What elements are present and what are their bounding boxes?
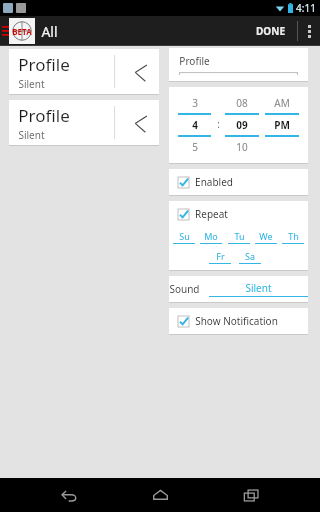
staticText: DONE <box>256 24 285 38</box>
button[interactable]: Sound <box>169 282 200 296</box>
button[interactable]: Repeat <box>169 201 308 227</box>
button[interactable]: Tu <box>228 230 250 244</box>
staticText: Sound <box>169 282 200 296</box>
staticText: 3 <box>192 96 198 110</box>
button[interactable]: Fr <box>209 250 231 264</box>
staticText: Show Notification <box>195 314 278 328</box>
staticText: We <box>259 230 273 242</box>
button[interactable]: Enabled <box>169 169 308 195</box>
button[interactable]: Show Notification <box>169 308 308 334</box>
staticText: All <box>41 22 58 41</box>
staticText: Sa <box>245 250 255 262</box>
button[interactable]: 08 <box>222 93 262 157</box>
staticText: Silent <box>18 128 45 142</box>
button[interactable]: Silent <box>209 281 308 297</box>
button[interactable]: Th <box>282 230 304 244</box>
staticText: Enabled <box>195 175 233 189</box>
staticText: Silent <box>18 77 45 91</box>
staticText: BETA <box>12 26 32 37</box>
staticText: 08 <box>236 96 248 110</box>
staticText: 4 <box>192 118 198 132</box>
staticText: Tu <box>234 230 245 242</box>
button[interactable]: Sa <box>239 250 261 264</box>
button[interactable]: 3 <box>175 93 214 157</box>
staticText: Mo <box>204 230 218 242</box>
staticText: : <box>217 117 220 131</box>
staticText: Th <box>288 230 299 242</box>
button[interactable]: Su <box>173 230 195 244</box>
staticText: Fr <box>216 250 225 262</box>
button[interactable]: Profile <box>179 54 298 75</box>
staticText: PM <box>274 118 290 132</box>
staticText: Su <box>179 230 190 242</box>
button[interactable]: We <box>255 230 277 244</box>
button[interactable]: Recent apps <box>229 478 273 512</box>
staticText: 5 <box>192 140 198 154</box>
staticText: Profile <box>179 54 210 68</box>
button[interactable]: Home <box>138 478 182 512</box>
staticText: Profile <box>18 104 70 127</box>
button[interactable]: AM <box>262 93 302 157</box>
button[interactable]: Profile <box>9 100 159 145</box>
staticText: Repeat <box>195 207 228 221</box>
button[interactable]: Profile <box>9 49 159 94</box>
button[interactable]: More options <box>298 16 320 46</box>
button[interactable]: Mo <box>200 230 222 244</box>
staticText: 10 <box>236 140 248 154</box>
staticText: AM <box>274 96 290 110</box>
button[interactable]: Back <box>47 478 91 512</box>
staticText: Profile <box>18 53 70 76</box>
button[interactable]: DONE <box>244 16 297 46</box>
staticText: 4:11 <box>296 1 316 15</box>
staticText: 09 <box>236 118 248 132</box>
staticText: Silent <box>245 281 272 295</box>
button[interactable]: Up, app icon <box>0 16 58 46</box>
